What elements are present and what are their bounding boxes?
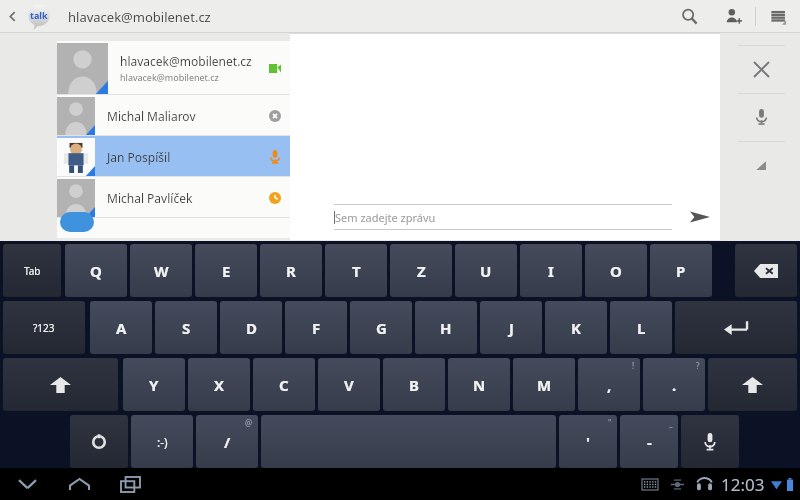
staticText: R	[286, 261, 296, 281]
button[interactable]: R	[260, 244, 322, 297]
staticText: @	[245, 417, 253, 428]
button[interactable]: .	[643, 358, 705, 411]
staticText: T	[352, 261, 361, 281]
staticText: :-)	[157, 434, 168, 450]
staticText: 12:03	[721, 473, 765, 496]
staticText: Jan Pospíšil	[107, 149, 171, 165]
button[interactable]: Michal Maliarov	[57, 95, 291, 136]
button[interactable]: N	[448, 358, 510, 411]
staticText: Q	[90, 261, 102, 281]
button[interactable]: Tab	[3, 244, 61, 297]
button[interactable]: ?123	[3, 301, 85, 354]
button[interactable]: Mic	[681, 415, 739, 468]
button[interactable]: Back	[0, 0, 24, 33]
button[interactable]: Q	[65, 244, 127, 297]
staticText: X	[214, 375, 225, 395]
button[interactable]: Z	[390, 244, 452, 297]
staticText: J	[509, 318, 514, 338]
button[interactable]: W	[130, 244, 192, 297]
button[interactable]: Michal Pavlíček	[57, 177, 291, 218]
button[interactable]: B	[383, 358, 445, 411]
staticText: S	[182, 318, 191, 338]
button[interactable]: Jan Pospíšil	[57, 136, 291, 177]
button[interactable]: G	[350, 301, 412, 354]
button[interactable]: Backspace	[735, 244, 797, 297]
staticText: _	[669, 417, 673, 428]
staticText: Tab	[24, 264, 41, 278]
staticText: !	[632, 360, 635, 371]
staticText: '	[586, 432, 590, 452]
button[interactable]: O	[585, 244, 647, 297]
staticText: Y	[149, 375, 159, 395]
button[interactable]: Shift	[708, 358, 797, 411]
button[interactable]: A	[90, 301, 152, 354]
staticText: E	[222, 261, 231, 281]
button[interactable]: Enter	[675, 301, 797, 354]
button[interactable]: Home	[54, 468, 105, 500]
button[interactable]: :-)	[131, 415, 193, 468]
button[interactable]: Expand	[722, 141, 800, 189]
staticText: A	[116, 318, 127, 338]
staticText: V	[344, 375, 354, 395]
button[interactable]: D	[220, 301, 282, 354]
button[interactable]: hlavacek@mobilenet.cz	[57, 41, 291, 95]
staticText: "	[608, 417, 612, 428]
staticText: hlavacek@mobilenet.cz	[68, 8, 211, 26]
staticText: B	[409, 375, 419, 395]
button[interactable]: Y	[123, 358, 185, 411]
button[interactable]: More options	[756, 0, 800, 33]
staticText: F	[312, 318, 321, 338]
button[interactable]: M	[513, 358, 575, 411]
button[interactable]: F	[285, 301, 347, 354]
staticText: Sem zadejte zprávu	[335, 210, 436, 225]
button[interactable]: U	[455, 244, 517, 297]
button[interactable]: Close	[722, 45, 800, 93]
staticText: K	[571, 318, 581, 338]
button[interactable]: /	[196, 415, 258, 468]
button[interactable]: Hide keyboard	[0, 468, 54, 500]
button[interactable]: S	[155, 301, 217, 354]
button[interactable]: Voice input	[722, 93, 800, 141]
staticText: -	[647, 432, 652, 452]
button[interactable]: '	[559, 415, 617, 468]
staticText: I	[548, 261, 554, 281]
button[interactable]: Add contact	[711, 0, 755, 33]
button[interactable]: X	[188, 358, 250, 411]
button[interactable]: E	[195, 244, 257, 297]
button[interactable]: C	[253, 358, 315, 411]
button[interactable]: L	[610, 301, 672, 354]
button[interactable]: Send	[684, 201, 716, 233]
staticText: G	[376, 318, 387, 338]
button[interactable]: P	[650, 244, 712, 297]
staticText: .	[672, 375, 677, 395]
staticText: L	[637, 318, 646, 338]
staticText: Michal Pavlíček	[107, 190, 193, 206]
staticText: H	[440, 318, 452, 338]
button[interactable]: I	[520, 244, 582, 297]
button[interactable]: -	[620, 415, 678, 468]
button[interactable]: Search	[667, 0, 711, 33]
staticText: talk	[30, 9, 48, 21]
button[interactable]: K	[545, 301, 607, 354]
staticText: ?123	[33, 321, 55, 335]
button[interactable]	[57, 218, 291, 238]
button[interactable]: Shift	[3, 358, 118, 411]
button[interactable]	[261, 415, 556, 468]
staticText: Michal Maliarov	[107, 108, 196, 124]
staticText: W	[154, 261, 169, 281]
staticText: hlavacek@mobilenet.cz	[120, 71, 219, 83]
staticText: hlavacek@mobilenet.cz	[120, 53, 252, 69]
button[interactable]: Sem zadejte zprávu	[334, 204, 672, 230]
button[interactable]: T	[325, 244, 387, 297]
button[interactable]: ,	[578, 358, 640, 411]
staticText: O	[610, 261, 622, 281]
button[interactable]: H	[415, 301, 477, 354]
staticText: M	[537, 375, 552, 395]
staticText: N	[473, 375, 486, 395]
staticText: D	[246, 318, 257, 338]
button[interactable]: Recent apps	[105, 468, 156, 500]
button[interactable]: V	[318, 358, 380, 411]
button[interactable]: Settings	[70, 415, 128, 468]
staticText: U	[480, 261, 492, 281]
button[interactable]: J	[480, 301, 542, 354]
